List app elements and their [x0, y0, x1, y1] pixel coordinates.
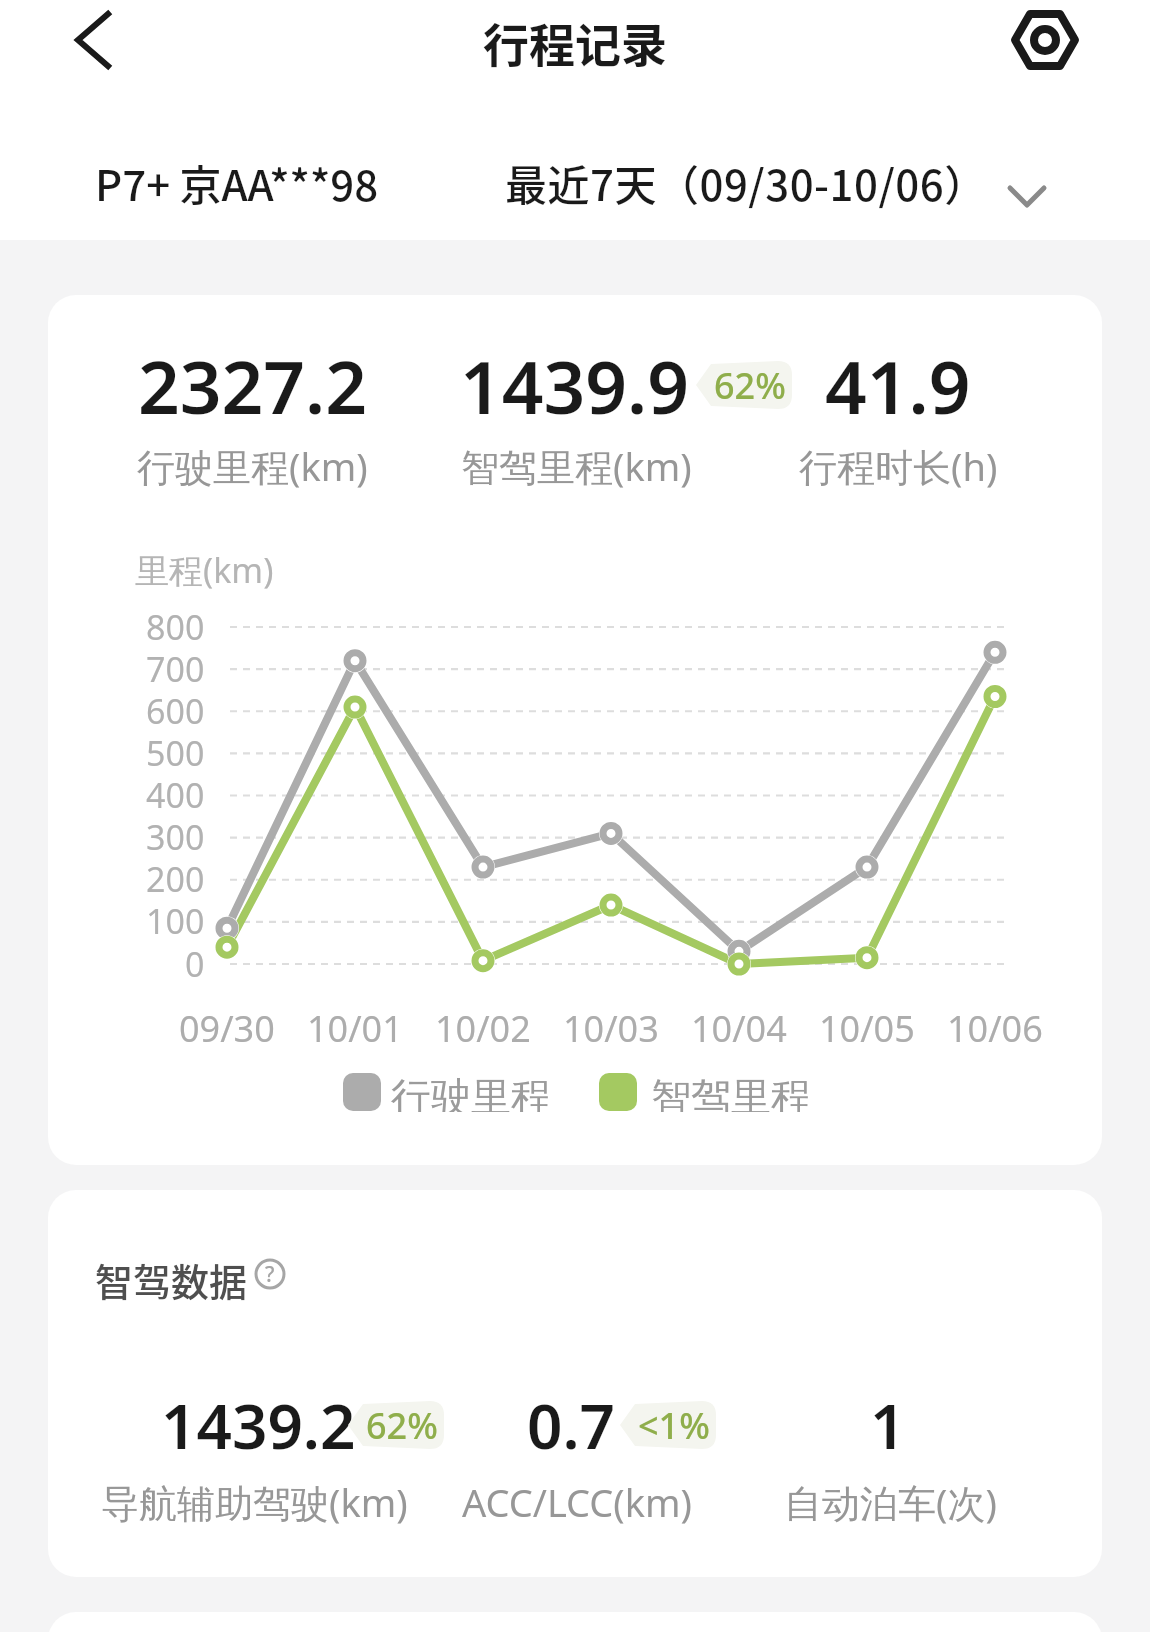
staticText: 2327.2	[138, 336, 367, 435]
staticText: 09/30	[179, 1004, 275, 1053]
staticText: 10/01	[307, 1004, 403, 1053]
staticText: 200	[146, 856, 205, 902]
staticText: 行驶里程	[391, 1072, 551, 1112]
button[interactable]	[1008, 6, 1082, 76]
staticText: 自动泊车(次)	[784, 1476, 997, 1528]
button[interactable]: P7+ 京AA***98	[80, 150, 420, 214]
button[interactable]: 最近7天（09/30-10/06）	[490, 150, 1070, 214]
staticText: 700	[146, 646, 205, 692]
staticText: 62%	[714, 361, 786, 409]
staticText: 10/02	[435, 1004, 531, 1053]
staticText: P7+ 京AA***98	[95, 152, 379, 213]
staticText: 智驾里程	[651, 1072, 811, 1112]
button[interactable]	[60, 10, 120, 70]
staticText: 10/06	[947, 1004, 1043, 1053]
staticText: <1%	[638, 1401, 710, 1449]
button[interactable]: ?	[253, 1257, 287, 1291]
staticText: 行程记录	[483, 9, 667, 76]
staticText: 0	[185, 941, 205, 987]
staticText: 1	[870, 1383, 906, 1467]
staticText: 1439.9	[460, 336, 689, 435]
staticText: 300	[146, 814, 205, 860]
staticText: 10/03	[563, 1004, 659, 1053]
staticText: 800	[146, 604, 205, 650]
staticText: 10/05	[819, 1004, 915, 1053]
staticText: 行驶里程(km)	[137, 440, 368, 492]
staticText: 导航辅助驾驶(km)	[101, 1476, 408, 1528]
staticText: 500	[146, 730, 205, 776]
staticText: 智驾里程(km)	[461, 440, 692, 492]
staticText: 1439.2	[161, 1383, 356, 1467]
staticText: 100	[146, 898, 205, 944]
staticText: 600	[146, 688, 205, 734]
staticText: 400	[146, 772, 205, 818]
staticText: 10/04	[691, 1004, 787, 1053]
staticText: 0.7	[527, 1383, 616, 1467]
staticText: ?	[265, 1260, 275, 1289]
staticText: 行程时长(h)	[799, 440, 998, 492]
staticText: 里程(km)	[135, 547, 274, 593]
staticText: 62%	[366, 1401, 438, 1449]
staticText: 41.9	[825, 336, 971, 435]
staticText: ACC/LCC(km)	[462, 1476, 692, 1528]
staticText: 最近7天（09/30-10/06）	[505, 152, 987, 213]
staticText: 智驾数据	[95, 1252, 248, 1307]
